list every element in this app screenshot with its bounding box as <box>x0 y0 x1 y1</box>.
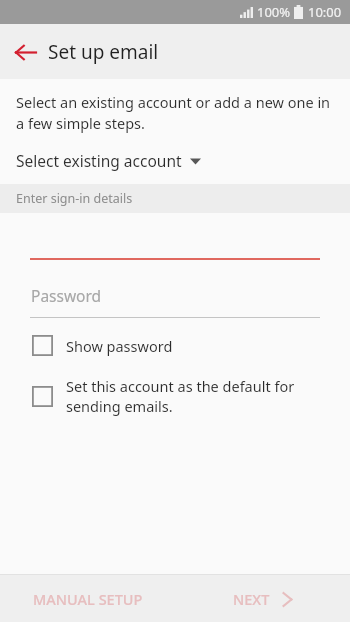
button[interactable]: Back <box>6 33 44 71</box>
button[interactable]: Show password <box>0 331 350 360</box>
staticText: Select an existing account or add a new … <box>16 92 332 134</box>
staticText: Set up email <box>48 39 159 65</box>
button[interactable]: NEXT <box>221 580 304 618</box>
staticText: 100% <box>257 3 291 21</box>
staticText: NEXT <box>233 589 270 609</box>
staticText: Show password <box>66 336 173 356</box>
button[interactable]: Set this account as the default for send… <box>0 372 350 420</box>
staticText: 10:00 <box>308 3 342 21</box>
button[interactable]: Password <box>0 260 350 318</box>
staticText: Enter sign-in details <box>16 190 133 207</box>
button[interactable] <box>0 213 350 260</box>
staticText: Password <box>31 285 102 306</box>
staticText: MANUAL SETUP <box>33 589 143 609</box>
staticText: Select existing account <box>16 150 182 171</box>
button[interactable]: Select existing account <box>16 148 209 173</box>
staticText: Set this account as the default for send… <box>66 376 330 416</box>
button[interactable]: MANUAL SETUP <box>19 580 157 618</box>
